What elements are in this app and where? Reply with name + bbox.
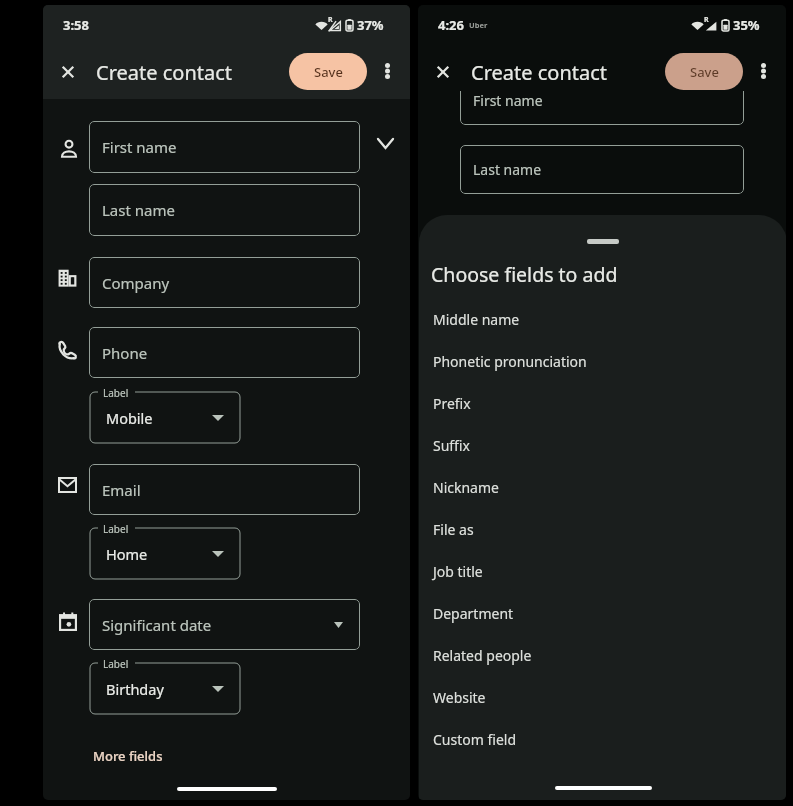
staticText: Custom field — [433, 730, 517, 749]
staticText: Last name — [473, 160, 542, 179]
staticText: Email — [102, 480, 141, 500]
staticText: Save — [690, 63, 719, 81]
button[interactable]: Close — [49, 53, 87, 91]
staticText: Create contact — [96, 59, 233, 86]
staticText: Website — [433, 688, 486, 707]
staticText: Label — [103, 657, 129, 671]
button[interactable]: Significant date — [89, 599, 360, 650]
button[interactable]: Label — [90, 663, 240, 714]
staticText: Phonetic pronunciation — [433, 352, 587, 371]
staticText: More fields — [93, 747, 163, 765]
button[interactable]: Last name — [89, 184, 360, 236]
button[interactable]: More options — [748, 56, 778, 86]
staticText: 37% — [357, 16, 384, 34]
staticText: File as — [433, 520, 474, 539]
staticText: Uber — [469, 20, 488, 30]
staticText: 3:58 — [63, 16, 89, 34]
staticText: Label — [103, 522, 129, 536]
button[interactable]: Website — [419, 676, 786, 718]
button[interactable]: Last name — [460, 145, 744, 194]
button[interactable]: First name — [89, 121, 360, 173]
staticText: Home — [106, 544, 148, 564]
button[interactable]: File as — [419, 508, 786, 550]
button[interactable]: Label — [90, 528, 240, 579]
button[interactable]: Custom field — [419, 718, 786, 760]
staticText: Company — [102, 273, 170, 293]
button[interactable]: Middle name — [419, 298, 786, 340]
staticText: Significant date — [102, 615, 212, 635]
staticText: Mobile — [106, 408, 153, 428]
button[interactable]: Save — [289, 53, 367, 90]
staticText: Phone — [102, 343, 148, 363]
staticText: Label — [103, 386, 129, 400]
staticText: R — [328, 15, 333, 25]
button[interactable]: Suffix — [419, 424, 786, 466]
button[interactable]: Prefix — [419, 382, 786, 424]
staticText: Nickname — [433, 478, 499, 497]
staticText: Choose fields to add — [431, 261, 618, 288]
button[interactable]: Job title — [419, 550, 786, 592]
button[interactable]: Label — [90, 392, 240, 443]
button[interactable]: Nickname — [419, 466, 786, 508]
staticText: 35% — [733, 16, 760, 34]
button[interactable]: Company — [89, 257, 360, 308]
button[interactable]: Expand name fields — [371, 129, 399, 157]
button[interactable]: Phone — [89, 327, 360, 378]
staticText: Related people — [433, 646, 532, 665]
button[interactable]: Related people — [419, 634, 786, 676]
staticText: First name — [102, 137, 177, 157]
staticText: Job title — [433, 562, 483, 581]
button[interactable]: More fields — [91, 745, 165, 767]
button[interactable]: Phonetic pronunciation — [419, 340, 786, 382]
staticText: Create contact — [471, 59, 608, 86]
staticText: Prefix — [433, 394, 471, 413]
button[interactable]: Email — [89, 464, 360, 515]
button[interactable]: Save — [665, 53, 743, 90]
staticText: Save — [314, 63, 343, 81]
staticText: 4:26 — [438, 16, 464, 34]
button[interactable]: Department — [419, 592, 786, 634]
staticText: Middle name — [433, 310, 520, 329]
button[interactable]: Close — [424, 53, 462, 91]
staticText: Last name — [102, 200, 175, 220]
staticText: Birthday — [106, 679, 164, 699]
staticText: Suffix — [433, 436, 470, 455]
staticText: R — [704, 15, 709, 25]
button[interactable]: More options — [372, 56, 402, 86]
staticText: First name — [473, 91, 543, 110]
staticText: Department — [433, 604, 514, 623]
button[interactable]: First name — [460, 91, 744, 125]
